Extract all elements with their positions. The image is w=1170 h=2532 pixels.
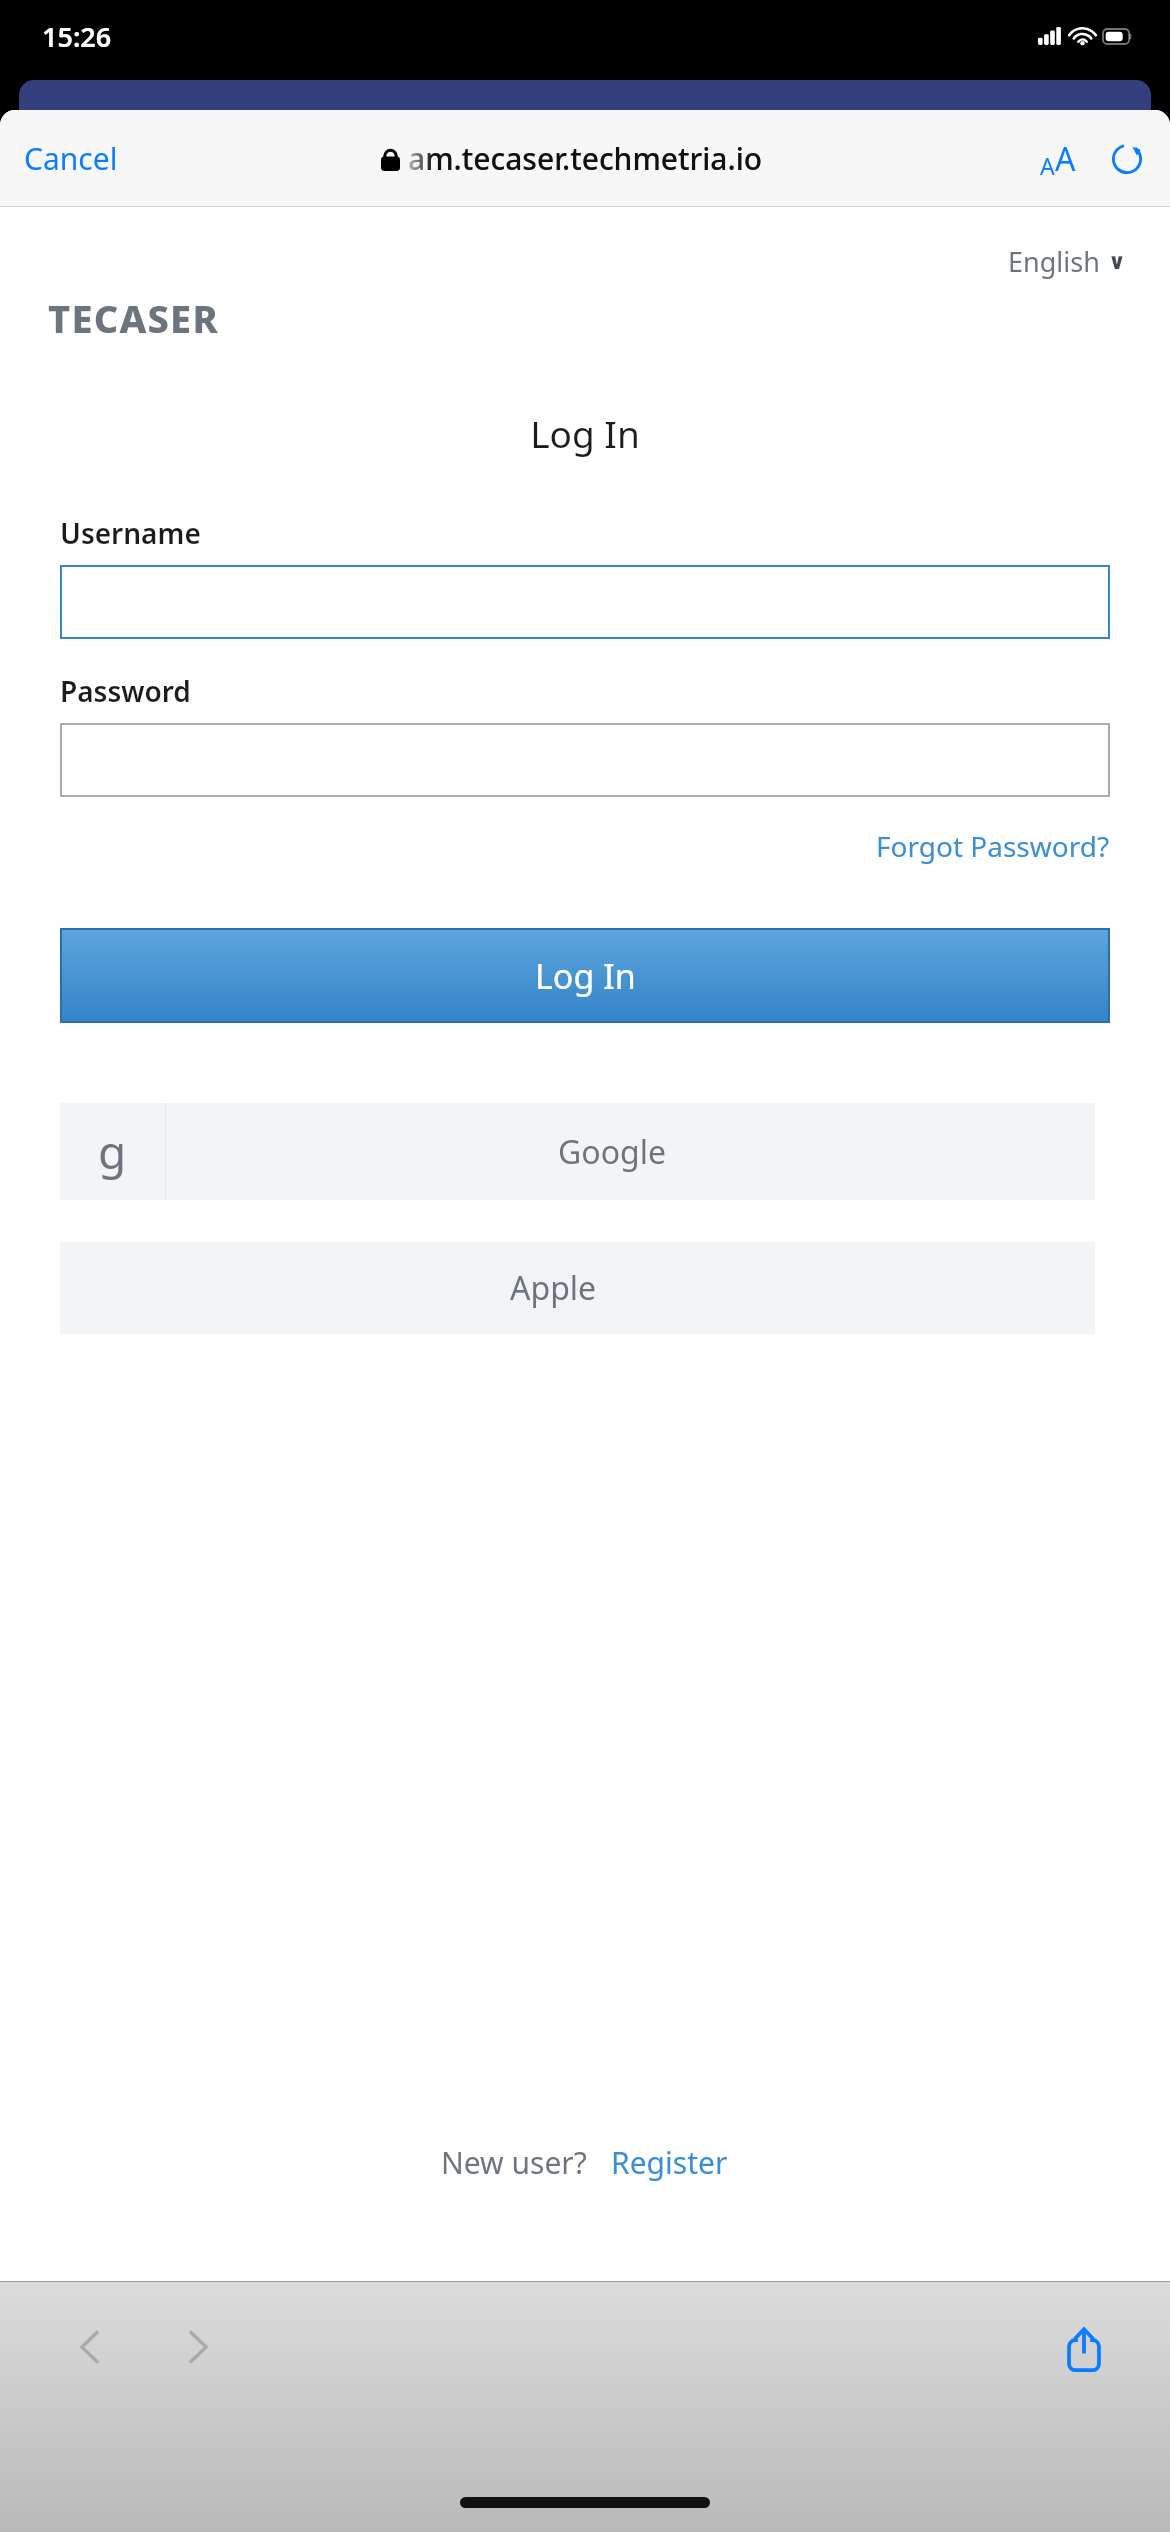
- button[interactable]: Cancel: [20, 128, 122, 189]
- button[interactable]: Apple: [60, 1242, 1095, 1334]
- staticText: Forgot Password?: [876, 827, 1110, 865]
- button[interactable]: Text size options: [1034, 131, 1082, 187]
- button[interactable]: g: [60, 1103, 1095, 1200]
- staticText: ∨: [1108, 249, 1126, 275]
- button[interactable]: Forgot Password?: [876, 821, 1110, 871]
- button[interactable]: TECASER: [48, 292, 219, 344]
- staticText: Register: [611, 2142, 728, 2183]
- button[interactable]: Forward: [160, 2309, 236, 2385]
- other: Secure connection: [381, 147, 400, 171]
- button[interactable]: [60, 723, 1110, 797]
- staticText: New user?: [441, 2142, 587, 2183]
- staticText: A: [1040, 150, 1055, 181]
- staticText: am.tecaser.techmetria.io: [408, 138, 763, 179]
- staticText: Password: [60, 672, 191, 710]
- button[interactable]: Reload page: [1104, 136, 1150, 182]
- staticText: English: [1008, 243, 1100, 280]
- staticText: Username: [60, 514, 201, 552]
- button[interactable]: Register: [609, 2136, 730, 2189]
- staticText: g: [98, 1120, 127, 1183]
- button[interactable]: English: [1004, 239, 1130, 284]
- button[interactable]: Secure connection: [122, 138, 1022, 179]
- button[interactable]: Share: [1044, 2309, 1124, 2389]
- staticText: Cancel: [24, 138, 118, 179]
- button[interactable]: Log In: [60, 928, 1110, 1023]
- staticText: A: [1055, 137, 1076, 181]
- staticText: Log In: [0, 408, 1170, 458]
- staticText: 15:26: [42, 18, 112, 55]
- staticText: Google: [558, 1130, 667, 1174]
- button[interactable]: Back: [52, 2309, 128, 2385]
- staticText: Log In: [535, 953, 636, 999]
- button[interactable]: [60, 565, 1110, 639]
- staticText: Apple: [510, 1266, 597, 1310]
